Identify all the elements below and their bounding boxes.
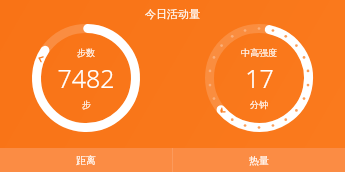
staticText: 步数 (77, 47, 95, 58)
staticText: 步 (82, 99, 91, 110)
button[interactable]: 中高强度 (172, 22, 345, 148)
staticText: 热量 (249, 154, 269, 167)
button[interactable]: 热量 (172, 148, 345, 172)
staticText: 今日活动量 (145, 7, 200, 21)
button[interactable]: 距离 (0, 148, 172, 172)
staticText: 7482 (57, 61, 115, 95)
staticText: 距离 (76, 154, 96, 167)
staticText: 分钟 (250, 99, 268, 110)
staticText: 中高强度 (241, 47, 277, 58)
button[interactable]: 步数 (0, 22, 172, 148)
staticText: 17 (245, 61, 274, 95)
